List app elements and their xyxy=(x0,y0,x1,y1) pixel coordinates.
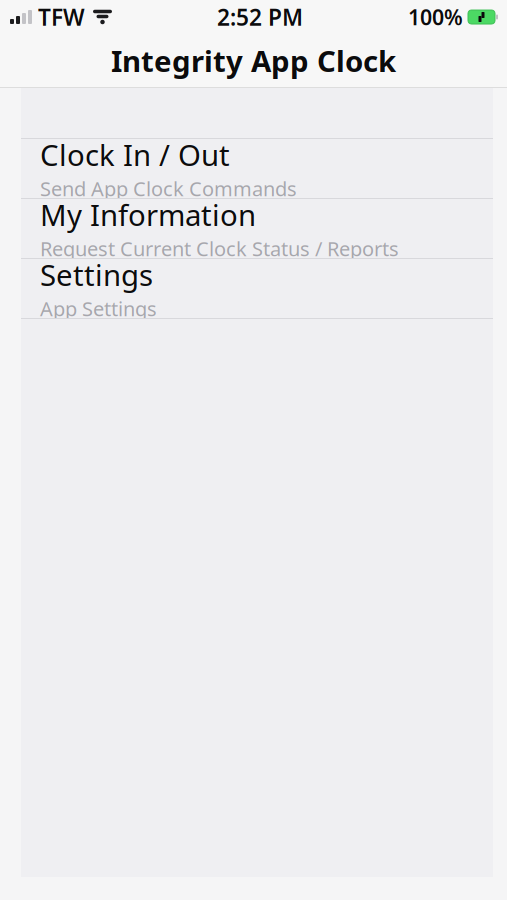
staticText: Request Current Clock Status / Reports xyxy=(40,235,399,262)
button[interactable]: Clock In / Out xyxy=(21,139,493,198)
staticText: Integrity App Clock xyxy=(111,41,396,80)
staticText: Clock In / Out xyxy=(40,135,230,174)
staticText: Send App Clock Commands xyxy=(40,175,297,202)
staticText: TFW xyxy=(38,2,85,32)
staticText: App Settings xyxy=(40,295,157,322)
staticText: My Information xyxy=(40,195,256,234)
staticText: 2:52 PM xyxy=(217,2,303,32)
button[interactable]: Settings xyxy=(21,259,493,318)
staticText: Settings xyxy=(40,255,153,294)
staticText: 100% xyxy=(408,3,463,31)
button[interactable]: My Information xyxy=(21,199,493,258)
